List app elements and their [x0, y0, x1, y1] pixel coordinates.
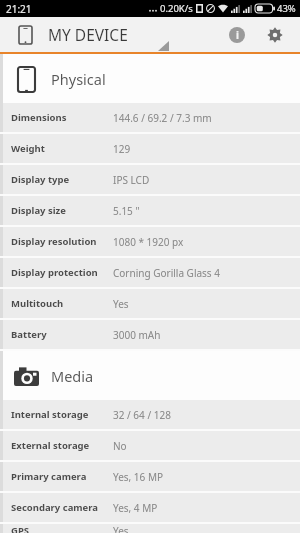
button[interactable]: Multitouch: [0, 289, 300, 318]
button[interactable]: Dimensions: [0, 103, 300, 132]
staticText: Display type: [11, 173, 70, 186]
staticText: Internal storage: [11, 408, 89, 421]
staticText: MY DEVICE: [48, 24, 128, 45]
staticText: 144.6 / 69.2 / 7.3 mm: [113, 111, 212, 125]
staticText: Physical: [51, 69, 106, 89]
button[interactable]: Secondary camera: [0, 493, 300, 522]
staticText: Yes, 16 MP: [113, 470, 164, 484]
staticText: Display protection: [11, 266, 98, 279]
button[interactable]: Settings: [260, 20, 290, 50]
staticText: External storage: [11, 439, 90, 452]
staticText: IPS LCD: [113, 173, 150, 187]
staticText: Secondary camera: [11, 501, 99, 514]
staticText: i: [236, 28, 239, 42]
staticText: Multitouch: [11, 297, 64, 310]
staticText: 5.15 ": [113, 204, 140, 218]
staticText: 1080 * 1920 px: [113, 235, 184, 249]
button[interactable]: Display size: [0, 196, 300, 225]
staticText: Yes: [113, 524, 129, 533]
staticText: Yes, 4 MP: [113, 501, 158, 515]
staticText: 32 / 64 / 128: [113, 408, 171, 422]
button[interactable]: Information: [222, 20, 252, 50]
button[interactable]: Primary camera: [0, 462, 300, 491]
button[interactable]: Display type: [0, 165, 300, 194]
staticText: 129: [113, 142, 131, 156]
staticText: 21:21: [6, 2, 32, 16]
staticText: 0.20K/s: [160, 2, 193, 15]
staticText: Dimensions: [11, 111, 67, 124]
button[interactable]: Battery: [0, 320, 300, 349]
button[interactable]: Display protection: [0, 258, 300, 287]
staticText: Display size: [11, 204, 66, 217]
staticText: Battery: [11, 328, 47, 341]
staticText: No: [113, 439, 127, 453]
staticText: Display resolution: [11, 235, 97, 248]
button[interactable]: Device: [11, 21, 39, 49]
button[interactable]: Physical: [0, 54, 300, 103]
button[interactable]: Weight: [0, 134, 300, 163]
button[interactable]: External storage: [0, 431, 300, 460]
staticText: Media: [51, 366, 94, 386]
staticText: 3000 mAh: [113, 328, 161, 342]
staticText: Weight: [11, 142, 45, 155]
button[interactable]: Media: [0, 351, 300, 400]
button[interactable]: Internal storage: [0, 400, 300, 429]
staticText: 43%: [277, 2, 296, 15]
staticText: Primary camera: [11, 470, 87, 483]
staticText: GPS: [11, 524, 30, 533]
button[interactable]: GPS: [0, 524, 300, 533]
staticText: Corning Gorilla Glass 4: [113, 266, 220, 280]
staticText: Yes: [113, 297, 129, 311]
button[interactable]: Display resolution: [0, 227, 300, 256]
